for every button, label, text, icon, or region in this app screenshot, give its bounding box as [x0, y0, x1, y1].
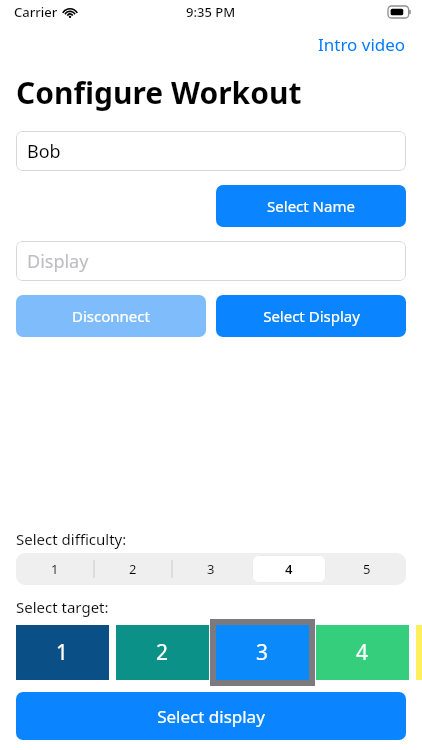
staticText: Select difficulty:	[16, 529, 127, 549]
button[interactable]: Intro video	[300, 30, 406, 58]
button[interactable]: Target 4	[316, 625, 409, 680]
button[interactable]: 4	[250, 553, 328, 585]
staticText: 9:35 PM	[186, 3, 236, 21]
staticText: Select Name	[267, 196, 355, 216]
button[interactable]: 1	[16, 553, 94, 585]
staticText: 1	[56, 638, 69, 667]
staticText: 1	[51, 560, 59, 578]
staticText: Select target:	[16, 597, 109, 617]
button[interactable]: 2	[94, 553, 172, 585]
staticText: Intro video	[318, 33, 406, 56]
staticText: 4	[356, 638, 369, 667]
staticText: 2	[129, 560, 137, 578]
button[interactable]: Display	[16, 241, 406, 281]
staticText: 4	[285, 560, 293, 578]
staticText: Select Display	[263, 306, 360, 326]
staticText: 3	[256, 638, 269, 667]
staticText: Disconnect	[72, 306, 150, 326]
staticText: Bob	[27, 139, 61, 164]
staticText: 2	[156, 638, 169, 667]
button[interactable]: Select Display	[216, 295, 406, 337]
button[interactable]: Select Name	[216, 185, 406, 227]
button[interactable]: 3	[172, 553, 250, 585]
button[interactable]: Bob	[16, 131, 406, 171]
button[interactable]: Target 3 selected	[210, 619, 315, 686]
button[interactable]: Target 2	[116, 625, 209, 680]
staticText: Select display	[157, 705, 265, 728]
staticText: 3	[207, 560, 215, 578]
staticText: Display	[27, 249, 89, 274]
button[interactable]: Disconnect	[16, 295, 206, 337]
button[interactable]: Select display	[16, 692, 406, 740]
staticText: 5	[363, 560, 371, 578]
button[interactable]: 5	[328, 553, 406, 585]
staticText: Configure Workout	[16, 72, 302, 113]
button[interactable]: Target 1	[16, 625, 109, 680]
staticText: Carrier	[14, 3, 58, 21]
